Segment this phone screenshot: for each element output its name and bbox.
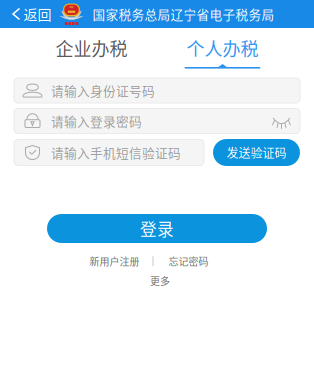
button[interactable]: 显示密码: [263, 108, 300, 133]
staticText: 更多: [150, 273, 170, 288]
staticText: 请输入登录密码: [51, 112, 142, 130]
staticText: 登录: [140, 216, 174, 240]
staticText: 国家税务总局辽宁省电子税务局: [92, 5, 274, 23]
button[interactable]: 企业办税: [51, 24, 131, 72]
button[interactable]: 发送验证码: [213, 139, 300, 166]
button[interactable]: 新用户注册: [83, 252, 152, 270]
button[interactable]: 个人办税: [182, 24, 262, 69]
staticText: 返回: [23, 4, 51, 24]
button[interactable]: 登录: [47, 214, 267, 243]
staticText: 请输入手机短信验证码: [51, 143, 181, 162]
button[interactable]: 更多: [142, 270, 178, 291]
button[interactable]: 返回: [0, 0, 57, 28]
staticText: 发送验证码: [226, 144, 286, 161]
button[interactable]: 忘记密码: [153, 252, 214, 270]
staticText: 忘记密码: [168, 254, 208, 268]
staticText: 个人办税: [186, 35, 258, 61]
staticText: 企业办税: [55, 35, 127, 61]
staticText: 请输入身份证号码: [51, 81, 155, 100]
staticText: 新用户注册: [89, 254, 139, 268]
